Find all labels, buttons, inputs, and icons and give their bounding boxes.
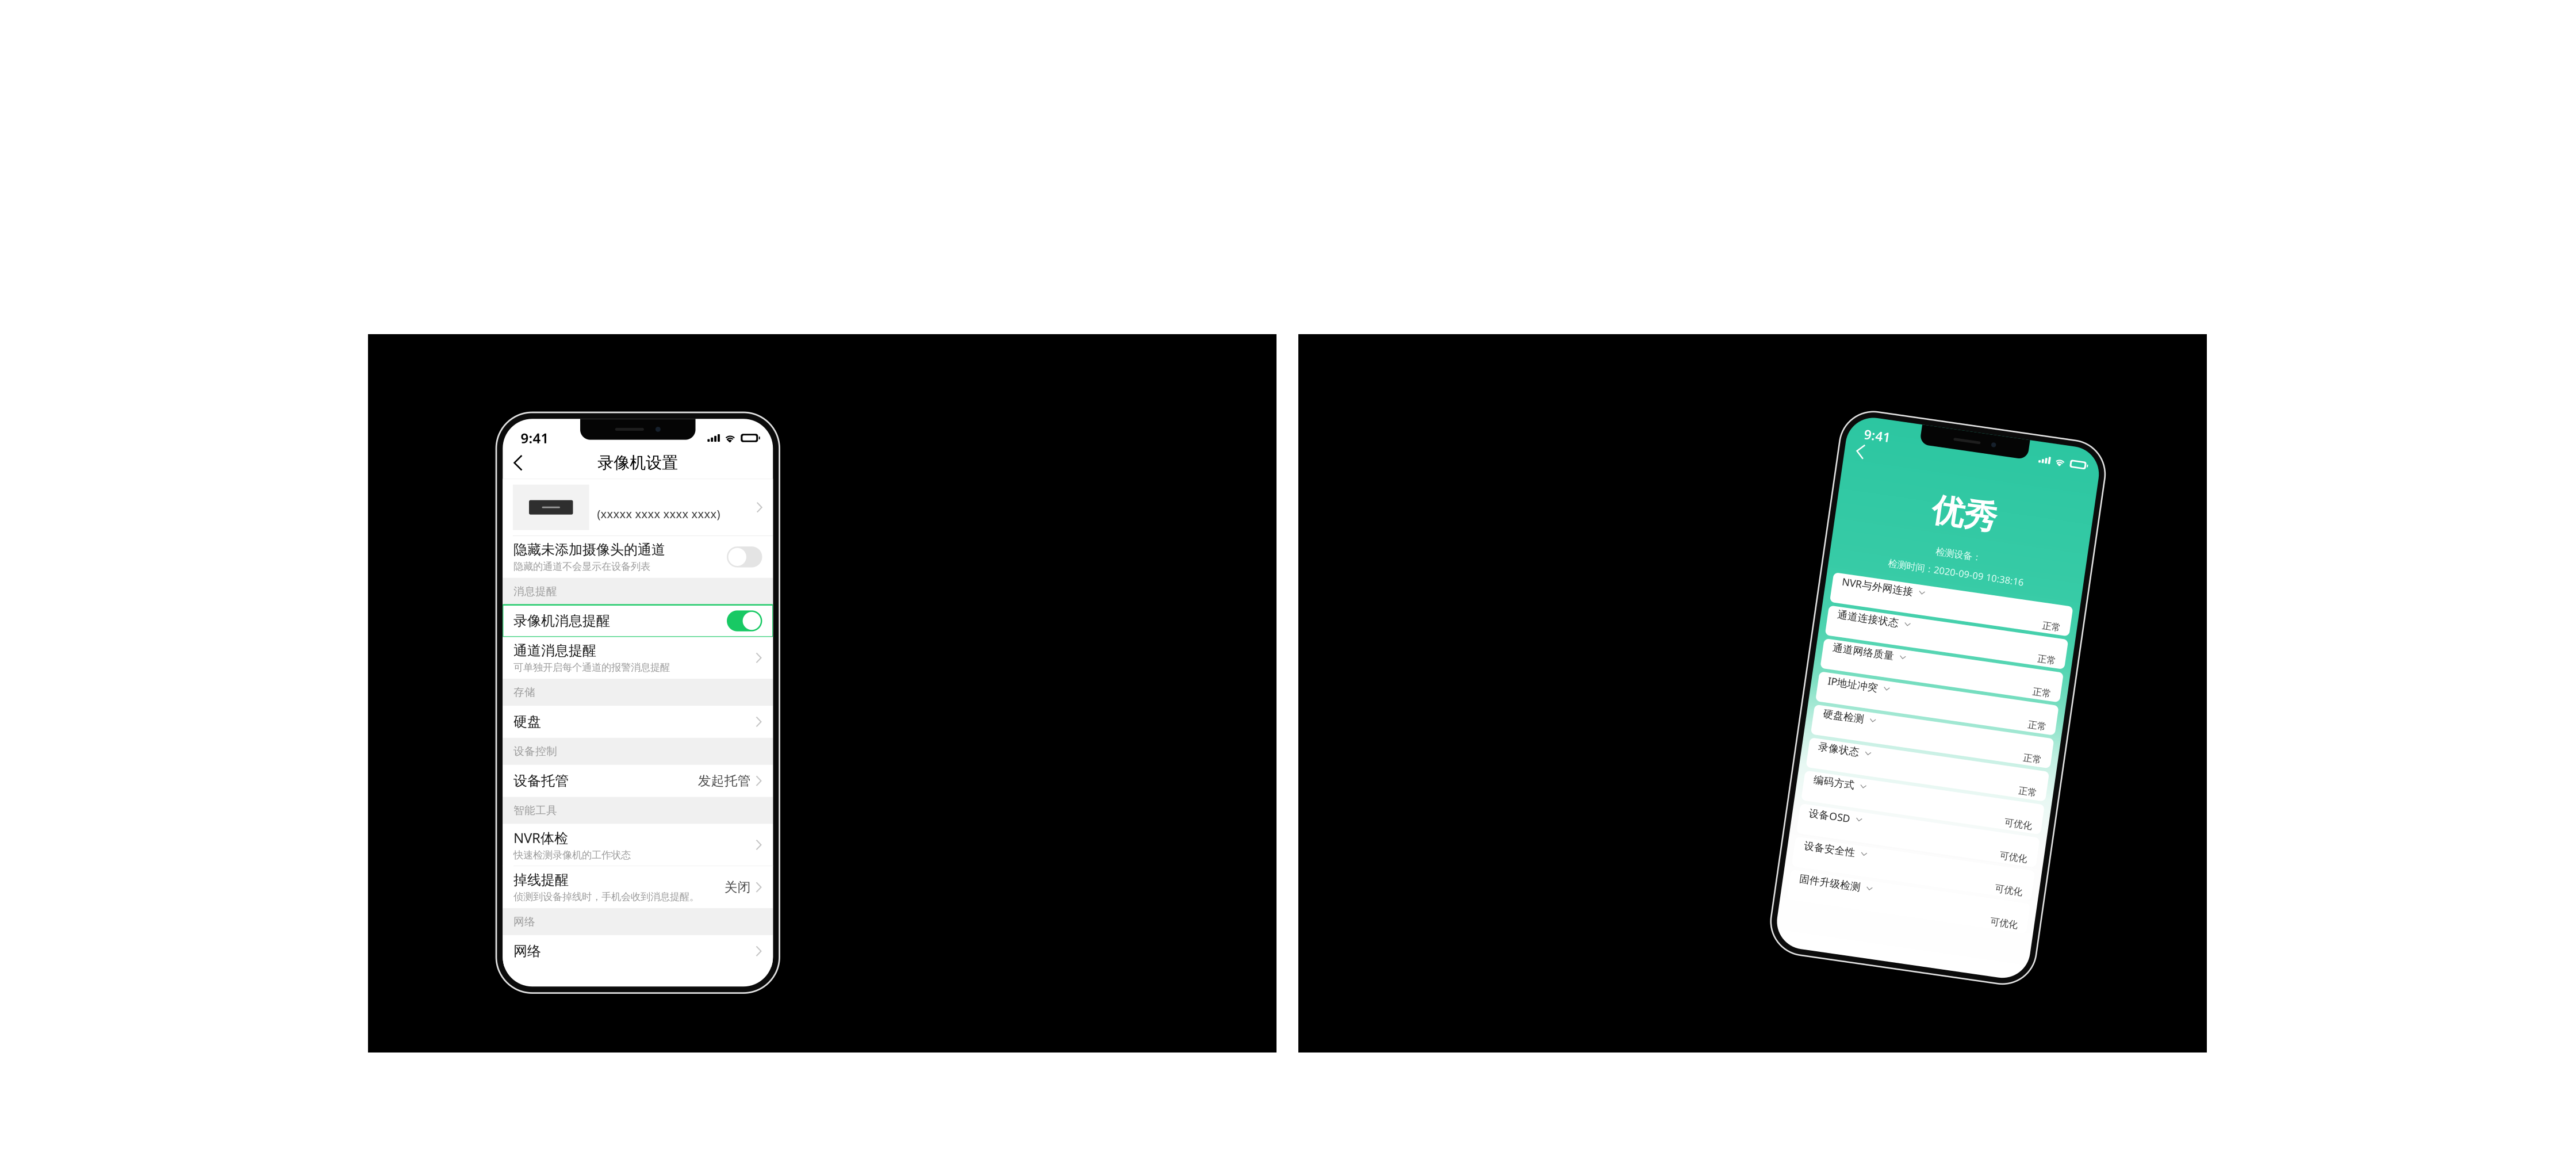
staticText: 设备控制	[514, 745, 557, 758]
button[interactable]: 隐藏未添加摄像头的通道	[503, 536, 773, 578]
button[interactable]: 录像状态	[1858, 758, 2114, 790]
button[interactable]: 硬盘检测	[1858, 723, 2114, 755]
staticText: NVR体检	[514, 828, 568, 847]
button[interactable]: 掉线提醒	[503, 866, 773, 908]
staticText: 网络	[514, 943, 541, 960]
staticText: 通道连接状态	[1868, 619, 1934, 632]
button[interactable]: NVR体检	[503, 824, 773, 866]
button[interactable]: Back	[503, 447, 534, 479]
button[interactable]: IP地址冲突	[1858, 688, 2114, 719]
staticText: NVR与外网连接	[1868, 583, 1944, 597]
staticText: 可单独开启每个通道的报警消息提醒	[514, 661, 670, 673]
button[interactable]: (xxxxx xxxx xxxx xxxx)	[503, 479, 773, 535]
staticText: 隐藏的通道不会显示在设备列表	[514, 560, 650, 573]
staticText: 消息提醒	[514, 585, 557, 598]
button[interactable]: 固件升级检测	[1858, 900, 2114, 931]
staticText: 硬盘	[514, 713, 541, 730]
button[interactable]: 通道网络质量	[1858, 652, 2114, 684]
staticText: 设备托管	[514, 772, 569, 789]
button[interactable]: 通道消息提醒	[503, 637, 773, 679]
staticText: 网络	[514, 915, 535, 928]
button[interactable]: 设备OSD	[1858, 829, 2114, 861]
staticText: 发起托管	[698, 773, 751, 789]
staticText: 9:41	[1869, 423, 1897, 441]
staticText: 掉线提醒	[514, 872, 569, 888]
staticText: 优秀	[1952, 480, 2021, 522]
staticText: 检测时间：2020-09-09 10:38:16	[1914, 557, 2059, 570]
staticText: 智能工具	[514, 804, 557, 817]
button[interactable]: NVR与外网连接	[1858, 582, 2114, 613]
staticText: 9:41	[521, 429, 549, 447]
button[interactable]: 编码方式	[1858, 794, 2114, 825]
button[interactable]: 硬盘	[503, 706, 773, 738]
staticText: 录像机设置	[598, 453, 678, 473]
button[interactable]: 设备托管	[503, 765, 773, 797]
staticText: 侦测到设备掉线时，手机会收到消息提醒。	[514, 891, 699, 903]
staticText: (xxxxx xxxx xxxx xxxx)	[597, 506, 720, 521]
button[interactable]: 通道连接状态	[1858, 617, 2114, 649]
button[interactable]: 录像机消息提醒	[503, 605, 773, 637]
button[interactable]: Back	[1851, 437, 1885, 466]
staticText: 隐藏未添加摄像头的通道	[514, 541, 665, 558]
staticText: 通道消息提醒	[514, 642, 596, 659]
button[interactable]: 网络	[503, 935, 773, 967]
staticText: 录像机消息提醒	[514, 612, 610, 629]
staticText: 存储	[514, 686, 535, 699]
staticText: 关闭	[724, 879, 751, 895]
staticText: 快速检测录像机的工作状态	[514, 849, 631, 861]
staticText: 通道网络质量	[1868, 654, 1934, 667]
button[interactable]: 设备安全性	[1858, 864, 2114, 896]
staticText: IP地址冲突	[1868, 689, 1922, 703]
staticText: 正常	[2084, 600, 2104, 612]
